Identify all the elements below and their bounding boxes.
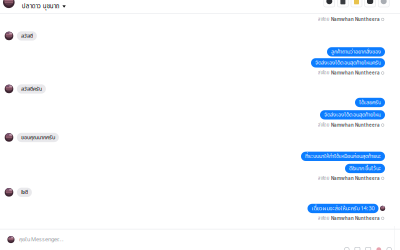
staticText: Namwhan Nuntheera (331, 176, 380, 181)
button[interactable]: Photo (355, 247, 360, 250)
button[interactable]: Sticker (376, 247, 381, 250)
staticText: เดี๋ยวผมจะส่งให้นะครับ 14:30 (311, 204, 374, 213)
button[interactable]: ดีใจมาก ขึ้นไว้นะ (345, 164, 385, 173)
staticText: ขอบคุณมากครับ (21, 133, 55, 142)
staticText: Namwhan Nuntheera (331, 122, 380, 128)
staticText: ปลาดาว นุชนาถ (22, 2, 60, 11)
staticText: สวัสดีครับ (21, 85, 42, 93)
button[interactable]: จัดส่งเองได้ตอนสุดท้ายไหมครับ (311, 58, 385, 67)
button[interactable]: GIF (366, 247, 371, 250)
staticText: ที่ระบบมาให้ทำได้เหมือนก่อนสุดท้ายนะ (305, 152, 381, 161)
staticText: ส่งโดย (318, 215, 330, 222)
button[interactable]: ลูกค้าถามว่าอยากสั่งของ (327, 47, 385, 56)
button[interactable]: Browser extension (365, 0, 376, 7)
button[interactable]: เดี๋ยวผมจะส่งให้นะครับ 14:30 (307, 204, 378, 213)
staticText: ส่งโดย (318, 70, 330, 76)
staticText: Namwhan Nuntheera (331, 17, 380, 22)
button[interactable]: Browser extension (337, 0, 348, 7)
button[interactable]: ปลาดาว นุชนาถ (0, 0, 400, 13)
button[interactable]: ขอบคุณมากครับ (5, 133, 59, 142)
staticText: ใจดี (21, 188, 28, 197)
button[interactable]: Browser extension (324, 0, 335, 7)
staticText: สวัสดี (21, 32, 33, 40)
staticText: จัดส่งเองได้ตอนสุดท้ายไหม (324, 111, 381, 119)
button[interactable]: Add (344, 247, 349, 250)
staticText: ส่งโดย (318, 122, 330, 128)
staticText: ลูกค้าถามว่าอยากสั่งของ (331, 48, 381, 56)
button[interactable]: จัดส่งเองได้ตอนสุดท้ายไหม (320, 110, 385, 119)
button[interactable]: ใจดี (5, 188, 32, 197)
button[interactable]: คุยใน Messenger... (0, 233, 400, 247)
staticText: Namwhan Nuntheera (331, 216, 380, 221)
staticText: ส่งโดย (318, 16, 330, 23)
staticText: จัดส่งเองได้ตอนสุดท้ายไหมครับ (315, 59, 381, 67)
button[interactable]: Browser extension (378, 0, 389, 7)
button[interactable]: ที่ระบบมาให้ทำได้เหมือนก่อนสุดท้ายนะ (301, 152, 385, 161)
button[interactable]: สวัสดีครับ (5, 84, 46, 94)
staticText: Namwhan Nuntheera (331, 70, 380, 76)
staticText: คุยใน Messenger... (19, 235, 64, 244)
staticText: ดีใจมาก ขึ้นไว้นะ (349, 164, 381, 173)
button[interactable]: สวัสดี (5, 31, 37, 41)
button[interactable]: ได้เลยครับ (355, 98, 385, 107)
button[interactable]: Browser extension (351, 0, 362, 7)
staticText: ได้เลยครับ (359, 98, 381, 107)
button[interactable]: Like (387, 247, 392, 250)
staticText: ส่งโดย (318, 175, 330, 182)
